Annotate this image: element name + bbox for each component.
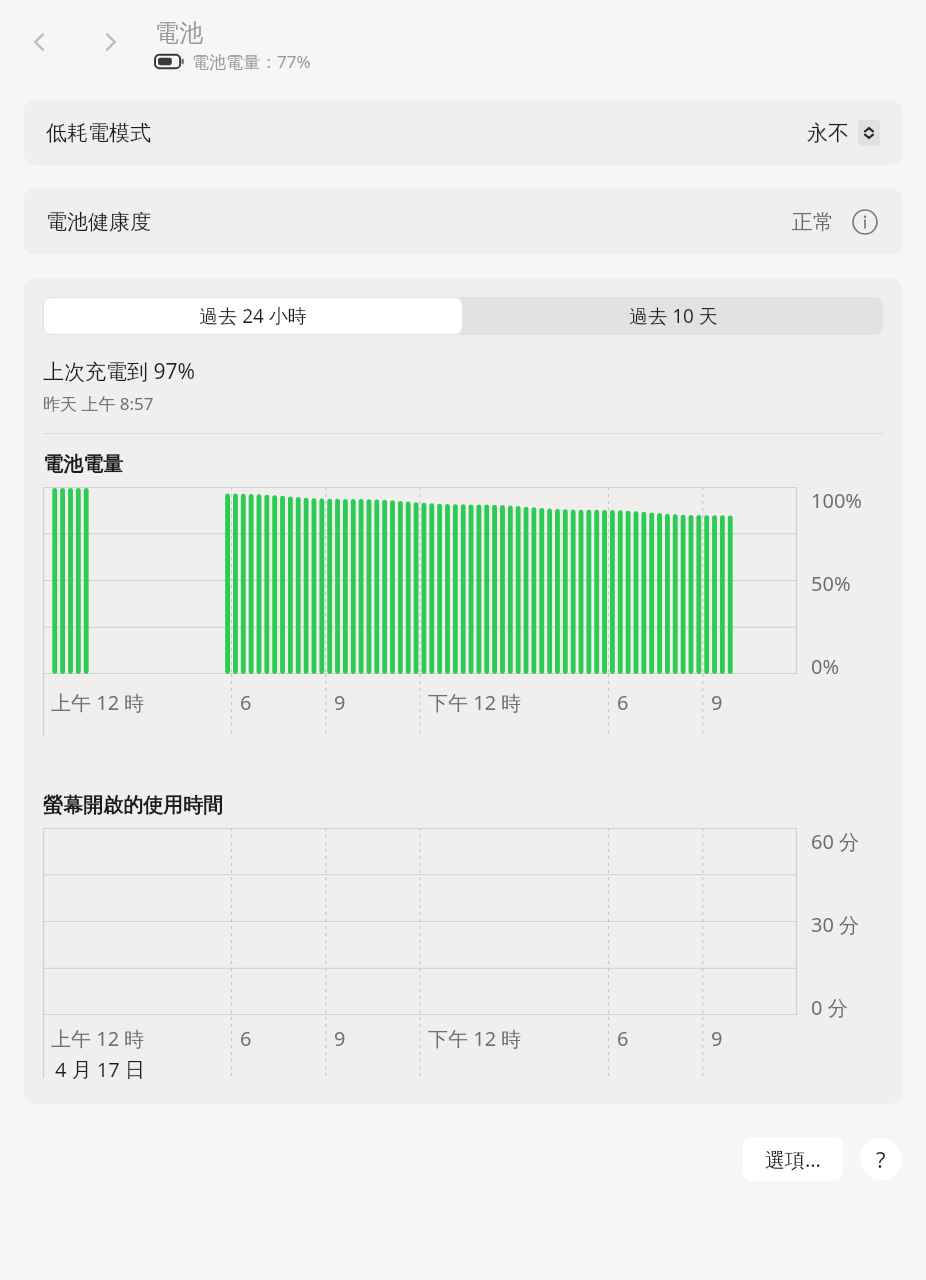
button[interactable]: Back: [20, 22, 60, 62]
staticText: 上午 12 時: [51, 1025, 145, 1052]
button[interactable]: 過去 24 小時: [44, 298, 462, 334]
staticText: 電池電量：77%: [192, 50, 311, 73]
staticText: 選項…: [765, 1146, 821, 1173]
staticText: 50%: [811, 570, 851, 594]
staticText: 0 分: [811, 994, 848, 1018]
staticText: 電池健康度: [46, 209, 151, 235]
staticText: 過去 24 小時: [199, 303, 307, 329]
staticText: 9: [711, 1025, 723, 1052]
staticText: 正常: [792, 209, 834, 235]
staticText: 電池: [155, 18, 203, 48]
staticText: 6: [617, 1025, 629, 1052]
button[interactable]: Forward: [90, 22, 130, 62]
staticText: 9: [711, 689, 723, 716]
staticText: 電池電量: [43, 452, 123, 477]
staticText: 下午 12 時: [428, 689, 522, 716]
button[interactable]: 電池健康度: [24, 188, 902, 255]
staticText: 過去 10 天: [629, 303, 718, 329]
staticText: 6: [617, 689, 629, 716]
staticText: 9: [334, 689, 346, 716]
button[interactable]: 過去 10 天: [463, 297, 883, 335]
button[interactable]: 低耗電模式: [24, 100, 902, 165]
staticText: ?: [876, 1144, 886, 1174]
staticText: 螢幕開啟的使用時間: [43, 793, 223, 818]
staticText: 永不: [807, 120, 849, 146]
button[interactable]: Help: [860, 1138, 902, 1180]
staticText: 上午 12 時: [51, 689, 145, 716]
button[interactable]: 選項…: [743, 1137, 843, 1181]
staticText: 昨天 上午 8:57: [43, 392, 154, 415]
button[interactable]: Battery health info: [850, 207, 880, 237]
staticText: 6: [240, 689, 252, 716]
staticText: 9: [334, 1025, 346, 1052]
staticText: 上次充電到 97%: [43, 357, 195, 386]
staticText: 4 月 17 日: [55, 1056, 145, 1083]
staticText: 30 分: [811, 911, 860, 935]
staticText: 下午 12 時: [428, 1025, 522, 1052]
staticText: 低耗電模式: [46, 120, 151, 146]
staticText: 60 分: [811, 828, 860, 852]
staticText: 100%: [811, 487, 862, 511]
staticText: 6: [240, 1025, 252, 1052]
staticText: 0%: [811, 653, 840, 677]
